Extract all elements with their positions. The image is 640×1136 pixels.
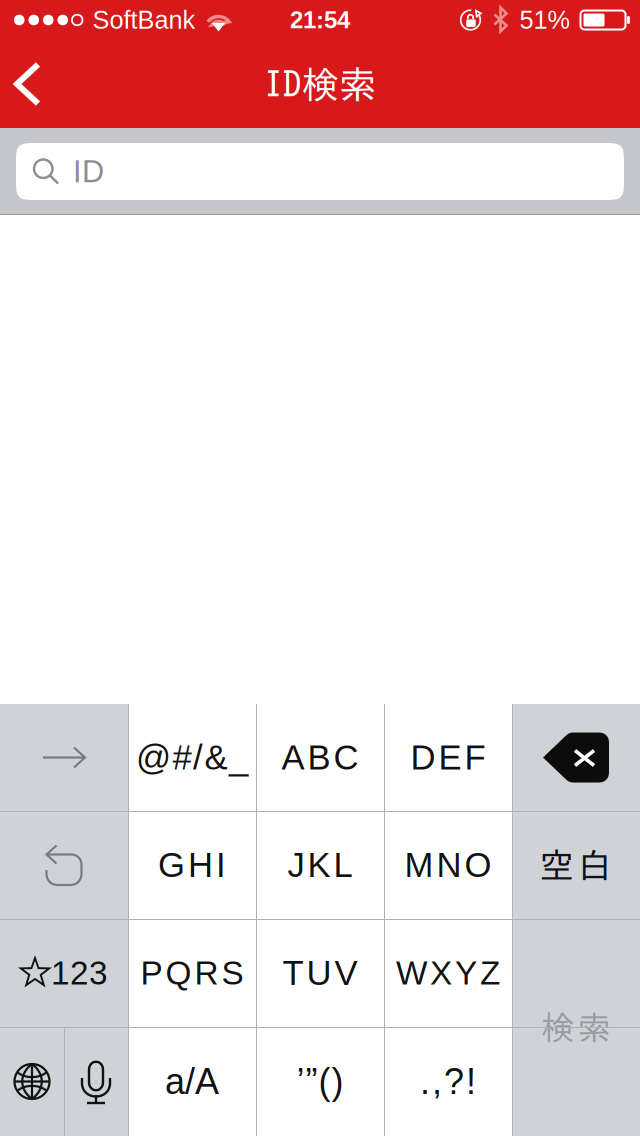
staticText: MNO: [404, 846, 491, 884]
staticText: TUV: [282, 954, 357, 992]
staticText: PQRS: [140, 954, 243, 992]
button[interactable]: GHI: [128, 811, 256, 919]
staticText: DEF: [410, 738, 485, 777]
button[interactable]: Back: [0, 40, 84, 128]
staticText: ABC: [281, 738, 358, 777]
staticText: 空白: [539, 848, 612, 882]
button[interactable]: PQRS: [128, 919, 256, 1027]
button[interactable]: Undo: [0, 811, 128, 919]
button[interactable]: .,?!: [384, 1027, 512, 1136]
button[interactable]: Search ID: [16, 143, 624, 200]
staticText: 21:54: [290, 7, 350, 33]
button[interactable]: Dictation: [64, 1027, 128, 1136]
button[interactable]: Symbols and numbers: [0, 919, 128, 1027]
button[interactable]: ABC: [256, 704, 384, 811]
button[interactable]: MNO: [384, 811, 512, 919]
button[interactable]: Cursor right: [0, 704, 128, 811]
button[interactable]: TUV: [256, 919, 384, 1027]
button[interactable]: Next keyboard: [0, 1027, 64, 1136]
button[interactable]: ’”(): [256, 1027, 384, 1136]
staticText: .,?!: [420, 1061, 476, 1102]
button[interactable]: 空白: [512, 811, 640, 919]
staticText: ID検索: [264, 65, 376, 103]
button[interactable]: JKL: [256, 811, 384, 919]
staticText: WXYZ: [396, 954, 500, 992]
staticText: a/A: [165, 1061, 219, 1102]
button[interactable]: @#/&_: [128, 704, 256, 811]
button[interactable]: DEF: [384, 704, 512, 811]
staticText: @#/&_: [136, 738, 248, 777]
staticText: ’”(): [296, 1061, 343, 1102]
staticText: SoftBank: [92, 6, 195, 34]
button[interactable]: 検索: [512, 919, 640, 1136]
button[interactable]: a/A: [128, 1027, 256, 1136]
staticText: 51%: [519, 6, 570, 34]
staticText: GHI: [158, 846, 226, 884]
staticText: 検索: [541, 1011, 610, 1044]
staticText: JKL: [287, 846, 352, 884]
button[interactable]: Delete: [512, 704, 640, 811]
button[interactable]: WXYZ: [384, 919, 512, 1027]
staticText: ID: [73, 154, 104, 189]
staticText: 123: [51, 954, 108, 992]
